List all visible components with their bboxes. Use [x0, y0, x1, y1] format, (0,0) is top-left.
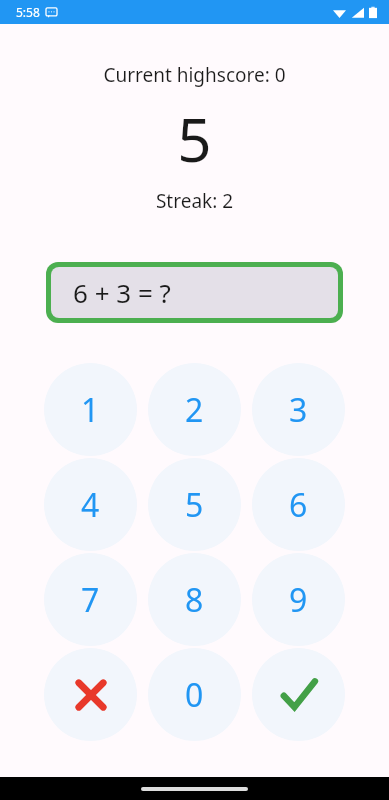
staticText: 7	[81, 578, 100, 622]
staticText: 9	[289, 578, 308, 622]
button[interactable]: Clear	[44, 648, 137, 741]
button[interactable]: 6 + 3 = ?	[46, 262, 343, 323]
staticText: 3	[289, 388, 308, 432]
button[interactable]: 8	[148, 553, 241, 646]
staticText: 5	[0, 98, 389, 180]
staticText: 5	[185, 483, 204, 527]
staticText: 6 + 3 = ?	[73, 275, 171, 310]
staticText: 4	[81, 483, 100, 527]
staticText: 1	[81, 388, 100, 432]
button[interactable]: 7	[44, 553, 137, 646]
button[interactable]: 3	[252, 363, 345, 456]
staticText: Current highscore: 0	[0, 62, 389, 88]
button[interactable]: 0	[148, 648, 241, 741]
button[interactable]: 5	[148, 458, 241, 551]
button[interactable]: 2	[148, 363, 241, 456]
staticText: Streak: 2	[0, 188, 389, 214]
staticText: 6	[289, 483, 308, 527]
staticText: 2	[185, 388, 204, 432]
button[interactable]: Submit answer	[252, 648, 345, 741]
button[interactable]: 4	[44, 458, 137, 551]
staticText: 8	[185, 578, 204, 622]
staticText: 0	[185, 673, 204, 717]
button[interactable]: 9	[252, 553, 345, 646]
button[interactable]: 1	[44, 363, 137, 456]
button[interactable]: 6	[252, 458, 345, 551]
staticText: 5:58	[16, 4, 40, 20]
